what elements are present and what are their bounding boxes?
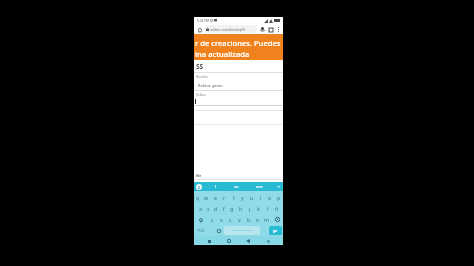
button[interactable]: w	[202, 193, 211, 202]
staticText: g	[230, 205, 234, 212]
staticText: b	[247, 216, 251, 223]
button[interactable]: ñ	[272, 204, 281, 213]
staticText: a	[199, 205, 202, 212]
staticText: Roblox	[196, 93, 206, 97]
button[interactable]: k	[254, 204, 263, 213]
button[interactable]: u	[247, 193, 256, 202]
button[interactable]: z	[207, 214, 217, 225]
button[interactable]: x	[217, 214, 226, 225]
button[interactable]: a	[196, 204, 204, 213]
staticText: ina actualizada haciendo cli	[195, 49, 282, 59]
staticText: h	[239, 205, 243, 212]
button[interactable]: l	[263, 204, 272, 213]
staticText: .	[264, 228, 266, 234]
button[interactable]: r	[220, 193, 229, 202]
staticText: x	[220, 216, 223, 223]
staticText: v	[238, 216, 241, 223]
staticText: t	[233, 194, 235, 201]
staticText: ,	[210, 228, 212, 234]
button[interactable]: Keyboard assistant	[196, 184, 202, 190]
staticText: d	[214, 205, 218, 212]
button[interactable]: o	[265, 193, 274, 202]
button[interactable]	[195, 98, 282, 105]
button[interactable]: c	[226, 214, 235, 225]
button[interactable]: Enter	[269, 226, 282, 235]
staticText: ?123	[197, 228, 205, 233]
button[interactable]: i	[256, 193, 265, 202]
button[interactable]: roblox.com/develop?0	[204, 25, 257, 33]
button[interactable]: s	[204, 204, 212, 213]
staticText: z	[211, 216, 214, 223]
staticText: f	[223, 205, 225, 212]
button[interactable]: v	[235, 214, 244, 225]
button[interactable]: Space	[224, 226, 260, 235]
button[interactable]: Recents	[264, 237, 272, 245]
button[interactable]: q	[194, 193, 202, 202]
staticText: l	[267, 205, 269, 212]
staticText: ñ	[275, 205, 279, 212]
staticText: o	[268, 194, 272, 201]
button[interactable]: p	[274, 193, 283, 202]
staticText: I	[215, 184, 217, 189]
staticText: r de creaciones. Puedes hab	[195, 38, 282, 48]
button[interactable]: More options	[275, 26, 281, 32]
button[interactable]: Roblox game	[194, 81, 283, 90]
button[interactable]: g	[228, 204, 236, 213]
staticText: s	[207, 205, 210, 212]
staticText: SS	[196, 62, 204, 71]
button[interactable]: Shift	[194, 214, 207, 225]
staticText: m	[264, 216, 269, 223]
button[interactable]: h	[236, 204, 245, 213]
staticText: c	[229, 216, 232, 223]
button[interactable]: Backspace	[271, 214, 283, 225]
staticText: roblox.com/develop?0	[210, 27, 246, 32]
button[interactable]: Keyboard switcher	[205, 237, 213, 245]
button[interactable]: Tabs	[267, 26, 274, 33]
staticText: u	[250, 194, 254, 201]
staticText: y	[241, 194, 244, 201]
staticText: no	[234, 184, 239, 189]
button[interactable]: Back	[244, 237, 252, 245]
button[interactable]: j	[245, 204, 254, 213]
button[interactable]: Home	[225, 237, 233, 245]
staticText: k	[257, 205, 260, 212]
button[interactable]: e	[211, 193, 220, 202]
button[interactable]: Emoji	[215, 226, 223, 235]
staticText: go	[273, 229, 278, 233]
staticText: Roblox game	[198, 83, 223, 88]
button[interactable]: d	[212, 204, 220, 213]
button[interactable]: m	[262, 214, 271, 225]
button[interactable]: Expand suggestions	[276, 184, 281, 189]
button[interactable]: ,	[207, 226, 215, 235]
button[interactable]: n	[253, 214, 262, 225]
button[interactable]: Voice search	[259, 26, 266, 33]
button[interactable]: Home	[196, 26, 203, 33]
staticText: n	[256, 216, 260, 223]
staticText: i	[260, 194, 262, 201]
staticText: j	[249, 205, 251, 212]
staticText: Nombre	[196, 75, 208, 79]
staticText: G	[198, 185, 201, 190]
button[interactable]: t	[229, 193, 238, 202]
staticText: q	[196, 194, 200, 201]
staticText: w	[204, 194, 209, 201]
staticText: one	[256, 184, 263, 189]
staticText: e	[214, 194, 217, 201]
staticText: r	[223, 194, 226, 201]
button[interactable]: f	[220, 204, 228, 213]
button[interactable]: y	[238, 193, 247, 202]
button[interactable]: ?123	[194, 226, 207, 235]
staticText: p	[277, 194, 281, 201]
button[interactable]: b	[244, 214, 253, 225]
staticText: file	[196, 173, 202, 178]
staticText: 5:24 PM	[197, 19, 209, 23]
